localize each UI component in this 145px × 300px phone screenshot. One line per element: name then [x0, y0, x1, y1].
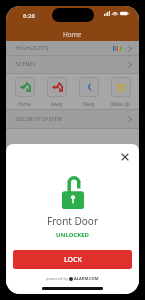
- staticText: Wake Up: [111, 101, 130, 107]
- staticText: Home: [18, 101, 31, 107]
- staticText: SECURITY SYSTEM: [16, 116, 63, 123]
- button[interactable]: Away: [45, 77, 68, 107]
- button[interactable]: Home: [13, 77, 36, 107]
- button[interactable]: SCENES: [6, 56, 139, 73]
- button[interactable]: Sleep: [77, 77, 100, 107]
- button[interactable]: Wake Up: [109, 77, 132, 107]
- staticText: Away: [51, 101, 63, 107]
- button[interactable]: Close: [119, 151, 131, 163]
- staticText: ALARM.COM: [74, 276, 99, 281]
- staticText: UNLOCKED: [6, 231, 139, 239]
- button[interactable]: HIGHLIGHTS: [6, 41, 139, 55]
- staticText: Home: [63, 30, 82, 39]
- button[interactable]: SECURITY SYSTEM: [6, 110, 139, 128]
- button[interactable]: LOCK: [13, 250, 132, 269]
- staticText: Front Door: [6, 214, 139, 228]
- staticText: HIGHLIGHTS: [16, 45, 49, 52]
- staticText: 6:26: [23, 12, 35, 20]
- staticText: Sleep: [83, 101, 95, 107]
- staticText: LOCK: [64, 255, 82, 265]
- staticText: powered by: [46, 276, 69, 281]
- staticText: SCENES: [16, 61, 36, 68]
